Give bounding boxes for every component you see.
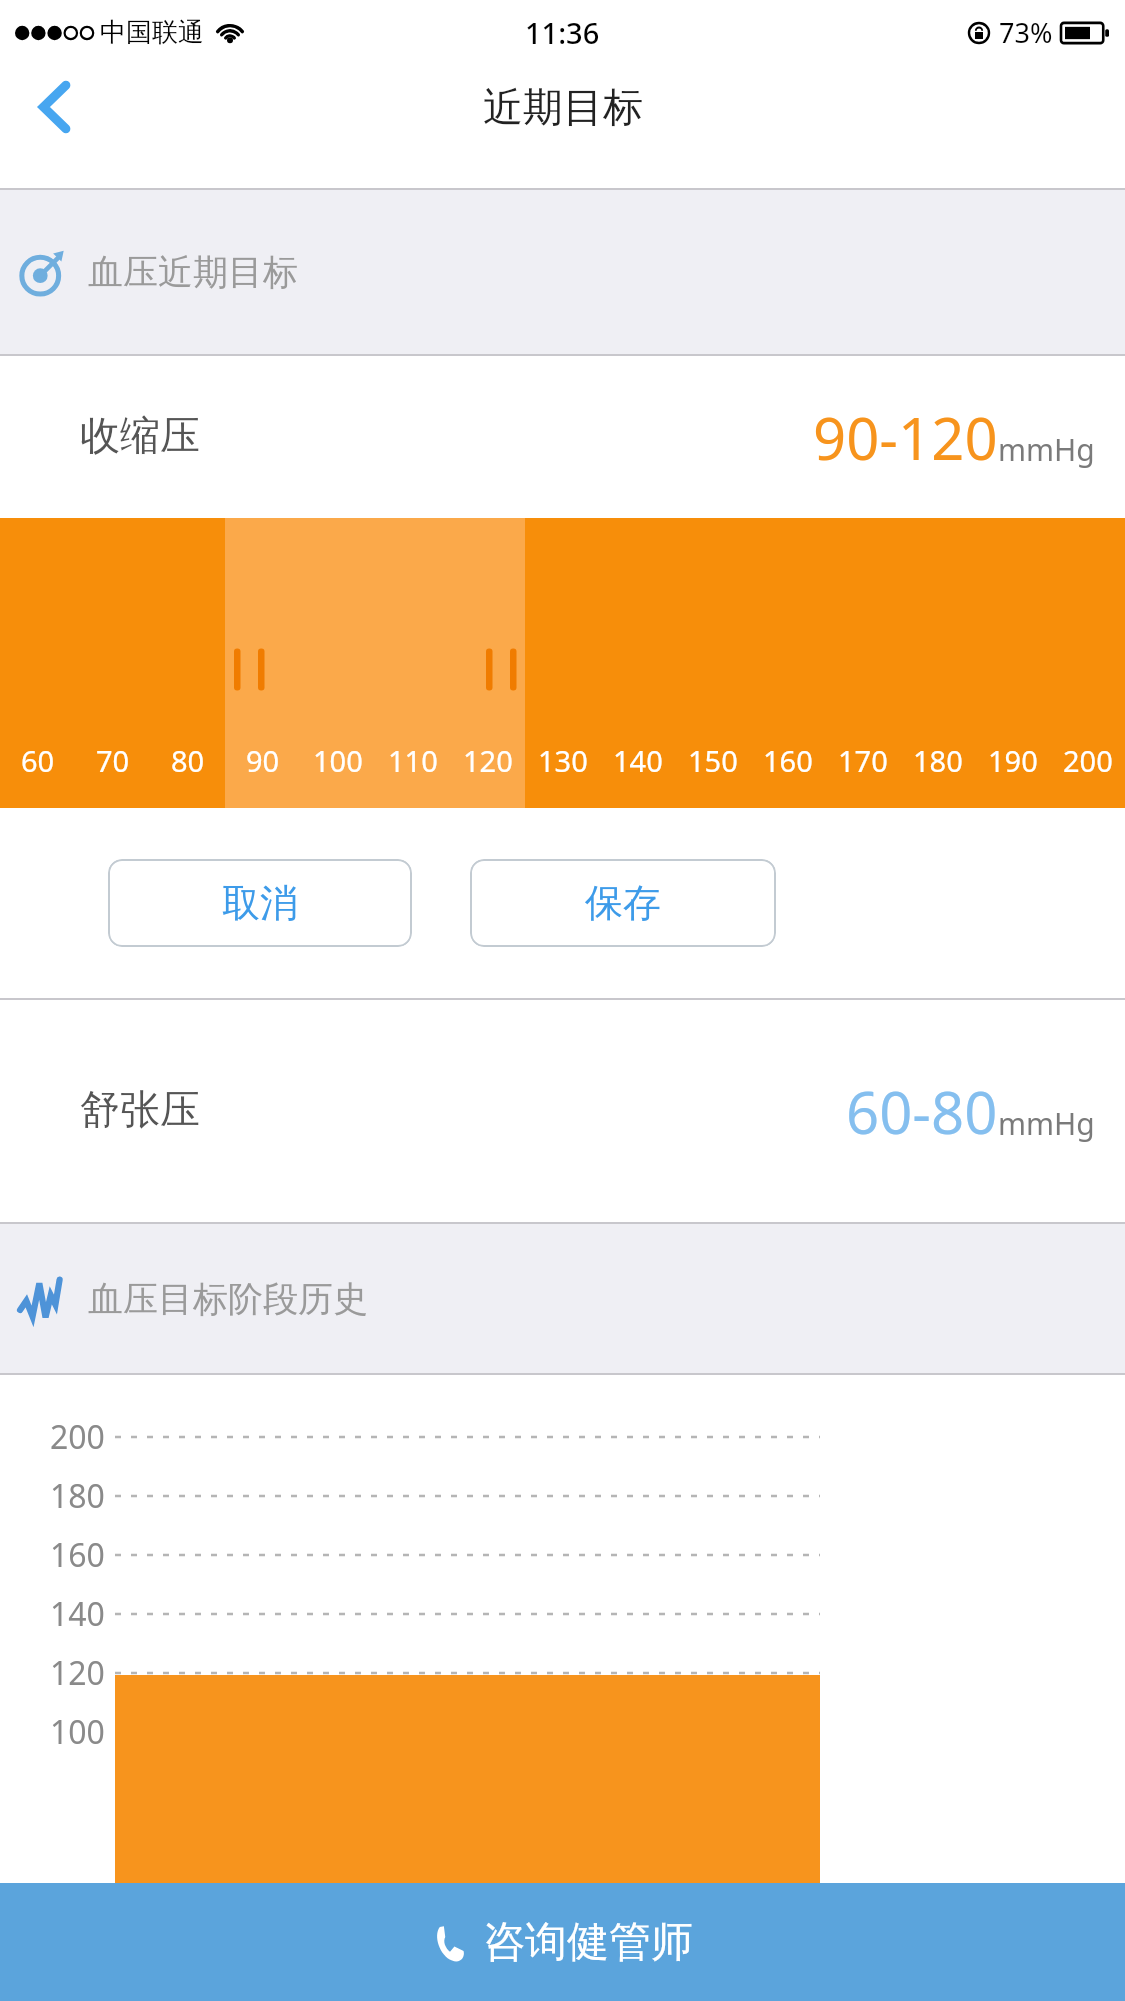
staticText: 11:36 <box>525 13 600 52</box>
staticText: 200 <box>50 1415 105 1459</box>
staticText: 血压目标阶段历史 <box>88 1277 368 1321</box>
staticText: 收缩压 <box>80 410 200 460</box>
staticText: 近期目标 <box>483 82 643 132</box>
staticText: 130 <box>538 741 588 780</box>
staticText: 160 <box>50 1533 105 1577</box>
button[interactable]: 舒张压 <box>0 1000 1125 1222</box>
staticText: 舒张压 <box>80 1084 200 1134</box>
staticText: 60-80 <box>846 1072 998 1151</box>
staticText: 90-120 <box>813 398 998 477</box>
staticText: mmHg <box>998 429 1095 470</box>
staticText: 100 <box>50 1710 105 1754</box>
staticText: 140 <box>50 1592 105 1636</box>
button[interactable]: 保存 <box>470 859 776 947</box>
staticText: 170 <box>838 741 888 780</box>
staticText: 70 <box>96 741 130 780</box>
staticText: 血压近期目标 <box>88 250 298 294</box>
staticText: 200 <box>1063 741 1113 780</box>
staticText: 120 <box>463 741 513 780</box>
staticText: 中国联通 <box>100 16 204 49</box>
button[interactable]: 收缩压 <box>0 356 1125 518</box>
button[interactable]: 60 <box>0 518 1125 808</box>
staticText: 73% <box>999 14 1053 51</box>
staticText: 160 <box>763 741 813 780</box>
staticText: 100 <box>313 741 363 780</box>
staticText: 90 <box>246 741 280 780</box>
staticText: mmHg <box>998 1103 1095 1144</box>
staticText: 140 <box>613 741 663 780</box>
staticText: 保存 <box>585 879 661 927</box>
staticText: 150 <box>688 741 738 780</box>
staticText: 60 <box>21 741 55 780</box>
staticText: 190 <box>988 741 1038 780</box>
staticText: 80 <box>171 741 205 780</box>
staticText: 120 <box>50 1651 105 1695</box>
staticText: 110 <box>388 741 438 780</box>
button[interactable]: 咨询健管师 <box>0 1883 1125 2001</box>
staticText: 取消 <box>222 879 298 927</box>
staticText: 180 <box>50 1474 105 1518</box>
staticText: 180 <box>913 741 963 780</box>
staticText: 咨询健管师 <box>483 1916 693 1969</box>
button[interactable]: Back <box>0 65 110 148</box>
button[interactable]: 取消 <box>108 859 412 947</box>
